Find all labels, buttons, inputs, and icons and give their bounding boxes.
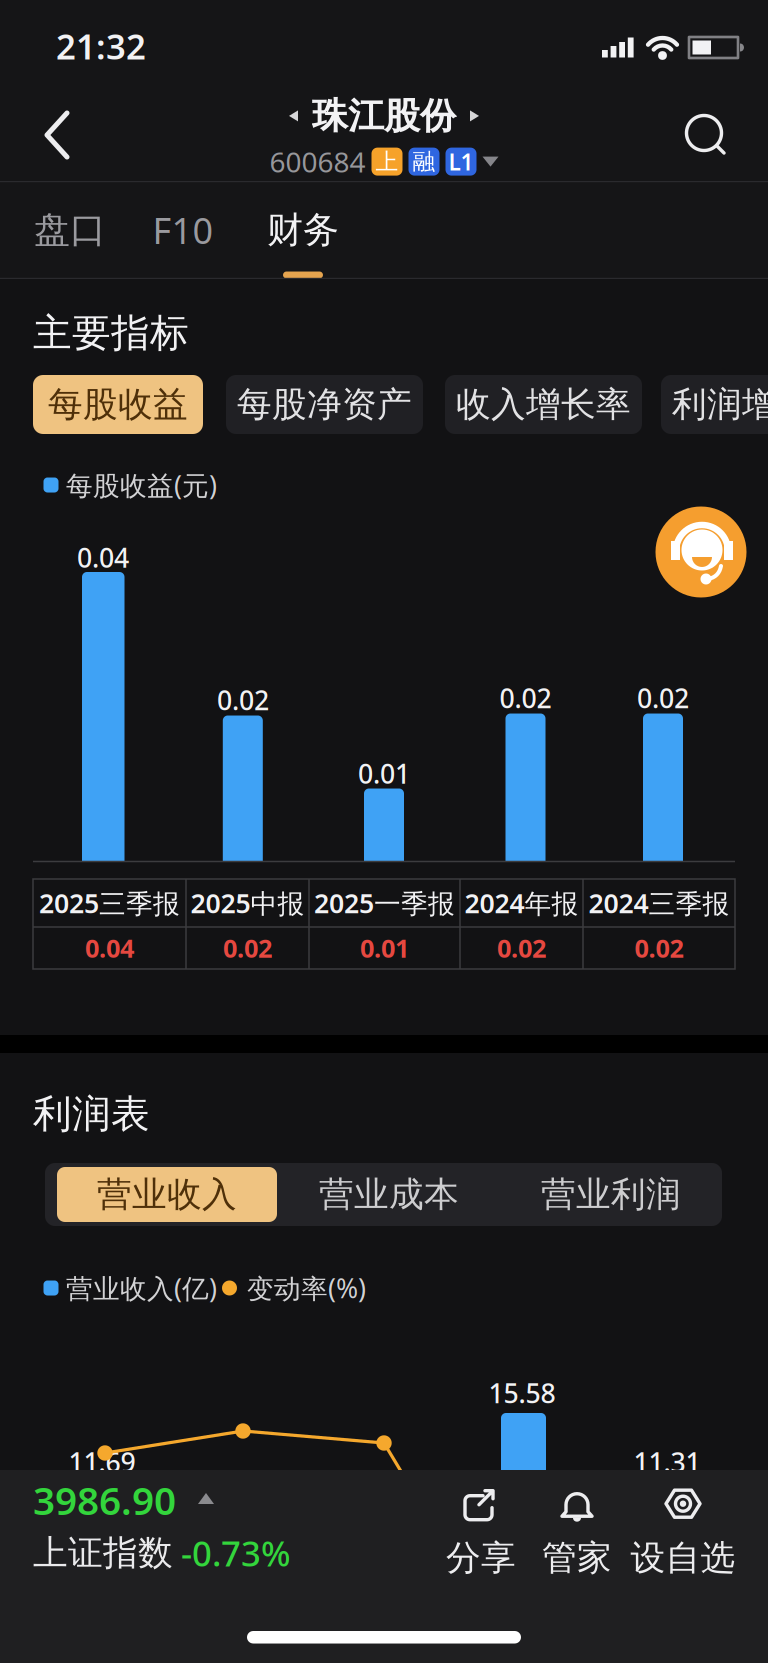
- staticText: 0.02: [217, 682, 269, 718]
- staticText: 营业利润: [541, 1173, 681, 1216]
- staticText: 0.02: [634, 931, 683, 965]
- staticText: 融: [412, 148, 435, 175]
- button[interactable]: 盘口: [10, 182, 130, 278]
- staticText: 0.02: [637, 680, 689, 716]
- button[interactable]: 收入增长率: [445, 375, 642, 434]
- staticText: 0.01: [360, 931, 409, 965]
- button[interactable]: 营业成本: [279, 1167, 499, 1222]
- button[interactable]: 珠江股份: [269, 94, 498, 180]
- staticText: 0.02: [499, 680, 551, 716]
- staticText: 营业收入(亿): [66, 1270, 217, 1306]
- staticText: 盘口: [34, 208, 106, 252]
- staticText: 0.02: [223, 931, 272, 965]
- staticText: L1: [448, 147, 473, 177]
- staticText: 15.58: [488, 1375, 555, 1411]
- staticText: 2025三季报: [39, 885, 180, 921]
- button[interactable]: 设自选: [628, 1485, 738, 1581]
- button[interactable]: 分享: [426, 1485, 536, 1581]
- staticText: 每股收益: [48, 383, 188, 426]
- staticText: 2024三季报: [588, 885, 729, 921]
- staticText: 2024年报: [464, 885, 578, 921]
- staticText: 上证指数: [33, 1532, 173, 1574]
- button[interactable]: Back: [36, 104, 80, 166]
- staticText: 11.31: [633, 1444, 700, 1480]
- button[interactable]: 管家: [522, 1485, 632, 1581]
- button[interactable]: 每股收益: [33, 375, 203, 434]
- staticText: 3986.90: [33, 1474, 176, 1526]
- button[interactable]: Search: [682, 111, 726, 155]
- staticText: 2025一季报: [314, 885, 455, 921]
- staticText: 分享: [446, 1537, 516, 1579]
- staticText: 营业收入: [97, 1173, 237, 1216]
- staticText: 0.04: [77, 540, 129, 575]
- staticText: 每股净资产: [237, 383, 412, 426]
- button[interactable]: 财务: [243, 182, 363, 278]
- button[interactable]: 3986.90: [33, 1470, 293, 1565]
- staticText: 600684: [269, 143, 365, 180]
- button[interactable]: F10: [123, 182, 243, 278]
- staticText: 每股收益(元): [66, 467, 217, 503]
- staticText: 0.02: [497, 931, 546, 965]
- staticText: -0.73%: [181, 1530, 291, 1576]
- staticText: 2025中报: [190, 885, 304, 921]
- button[interactable]: 营业利润: [501, 1167, 721, 1222]
- staticText: 利润增长率: [672, 383, 768, 426]
- button[interactable]: 每股净资产: [226, 375, 423, 434]
- staticText: 收入增长率: [456, 383, 631, 426]
- button[interactable]: 营业收入: [57, 1167, 277, 1222]
- staticText: 21:32: [56, 23, 146, 69]
- staticText: 0.04: [85, 931, 134, 965]
- staticText: 利润表: [33, 1090, 150, 1138]
- staticText: 主要指标: [33, 309, 189, 357]
- staticText: 管家: [542, 1537, 612, 1579]
- staticText: 财务: [267, 208, 339, 252]
- staticText: 11.69: [68, 1444, 135, 1480]
- staticText: 营业成本: [319, 1173, 459, 1216]
- staticText: 变动率(%): [247, 1270, 366, 1306]
- button[interactable]: 客服: [655, 506, 747, 598]
- staticText: 设自选: [630, 1537, 735, 1579]
- staticText: 珠江股份: [312, 94, 456, 138]
- button[interactable]: 利润增长率: [661, 375, 768, 434]
- staticText: 上: [375, 148, 398, 175]
- staticText: 0.01: [358, 756, 410, 791]
- staticText: F10: [152, 206, 213, 254]
